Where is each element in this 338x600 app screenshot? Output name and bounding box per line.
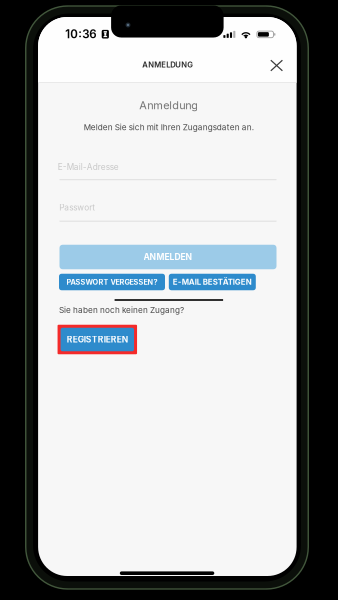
staticText: E-Mail-Adresse [58, 162, 119, 172]
staticText: ANMELDEN [143, 252, 192, 262]
button[interactable]: E-MAIL BESTÄTIGEN [169, 274, 256, 290]
staticText: REGISTRIEREN [67, 334, 128, 345]
staticText: Melden Sie sich mit Ihren Zugangsdaten a… [84, 122, 254, 132]
staticText: PASSWORT VERGESSEN? [66, 278, 157, 286]
button[interactable]: PASSWORT VERGESSEN? [59, 274, 165, 290]
button[interactable]: REGISTRIEREN [57, 325, 137, 354]
button[interactable]: Schließen [262, 50, 292, 80]
button[interactable]: ANMELDEN [59, 245, 276, 269]
staticText: Anmeldung [139, 99, 198, 112]
staticText: Sie haben noch keinen Zugang? [59, 305, 184, 315]
staticText: E-MAIL BESTÄTIGEN [173, 277, 252, 287]
staticText: ANMELDUNG [142, 60, 193, 69]
staticText: Passwort [59, 202, 95, 212]
staticText: 10:36 [65, 27, 96, 41]
